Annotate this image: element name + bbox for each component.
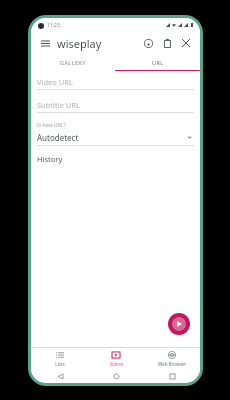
staticText: Subtitle URL [37,100,80,110]
staticText: Lists [55,361,65,367]
button[interactable]: URL [115,54,200,70]
button[interactable]: Web Browser [144,348,200,370]
button[interactable]: Recents [165,370,179,383]
button[interactable]: Autodetect [37,132,194,143]
staticText: wiseplay [57,36,102,51]
button[interactable]: GALLERY [31,54,115,70]
button[interactable]: Menu [37,35,53,51]
staticText: Is host URL? [37,122,66,129]
staticText: Autodetect [37,132,79,143]
button[interactable]: Paste [159,35,175,51]
staticText: Videos [109,361,124,367]
staticText: URL [152,59,164,66]
staticText: GALLERY [60,59,86,66]
button[interactable]: Lists [31,348,88,370]
staticText: Video URL [37,77,73,87]
button[interactable]: Cast [140,35,156,51]
button[interactable]: Play [168,313,190,335]
staticText: 11:23 [47,22,60,29]
button[interactable]: Home [109,370,123,383]
staticText: History [37,154,63,164]
button[interactable]: Close [178,35,194,51]
button[interactable]: Back [53,370,67,383]
button[interactable]: Videos [88,348,144,370]
staticText: Web Browser [158,361,186,367]
